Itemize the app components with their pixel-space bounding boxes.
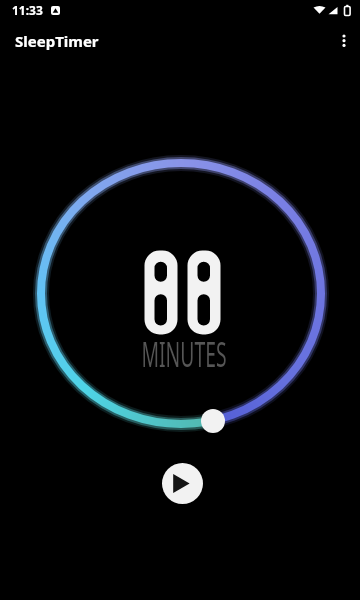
button[interactable] [162,463,203,504]
staticText: MINUTES [141,330,227,367]
button[interactable] [332,28,356,52]
staticText: SleepTimer [15,31,99,51]
button[interactable] [201,409,225,433]
staticText: 11:33 [12,2,43,18]
